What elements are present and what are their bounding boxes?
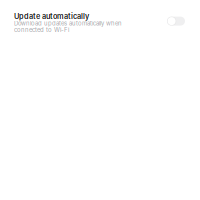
staticText: connected to Wi-Fi — [14, 26, 69, 33]
staticText: Download updates automatically when — [14, 20, 122, 27]
button[interactable]: Update automatically — [0, 0, 200, 33]
staticText: Update automatically — [14, 12, 89, 21]
